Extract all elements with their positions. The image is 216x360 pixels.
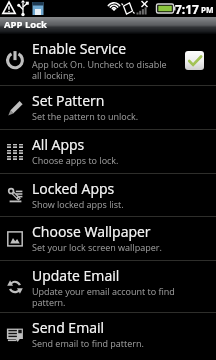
button[interactable]: Update Email [0,261,216,312]
staticText: App lock On. Uncheck to disable all lock… [32,58,178,81]
button[interactable]: Enable Service checkbox [185,51,204,70]
button[interactable]: Choose Wallpaper [0,217,216,260]
staticText: 7:17 [175,1,199,17]
staticText: Choose apps to lock. [32,154,119,166]
button[interactable]: All Apps [0,130,216,173]
staticText: Update Email [32,266,120,285]
staticText: Update your email account to find patter… [32,285,178,308]
staticText: APP Lock [4,18,47,31]
button[interactable]: Send Email [0,313,216,360]
staticText: All Apps [32,135,85,154]
staticText: Locked Apps [32,179,115,198]
staticText: Set Pattern [32,91,105,110]
staticText: Show locked apps list. [32,198,124,210]
staticText: Set your lock screen wallpaper. [32,241,162,253]
button[interactable]: Set Pattern [0,86,216,129]
button[interactable]: Enable Service [0,34,216,85]
staticText: Send Email [32,318,105,337]
staticText: Set the pattern to unlock. [32,110,139,122]
staticText: Enable Service [32,39,127,58]
staticText: Choose Wallpaper [32,222,151,241]
button[interactable]: Locked Apps [0,174,216,216]
staticText: PM [201,4,214,15]
staticText: Send email to find pattern. [32,337,144,349]
